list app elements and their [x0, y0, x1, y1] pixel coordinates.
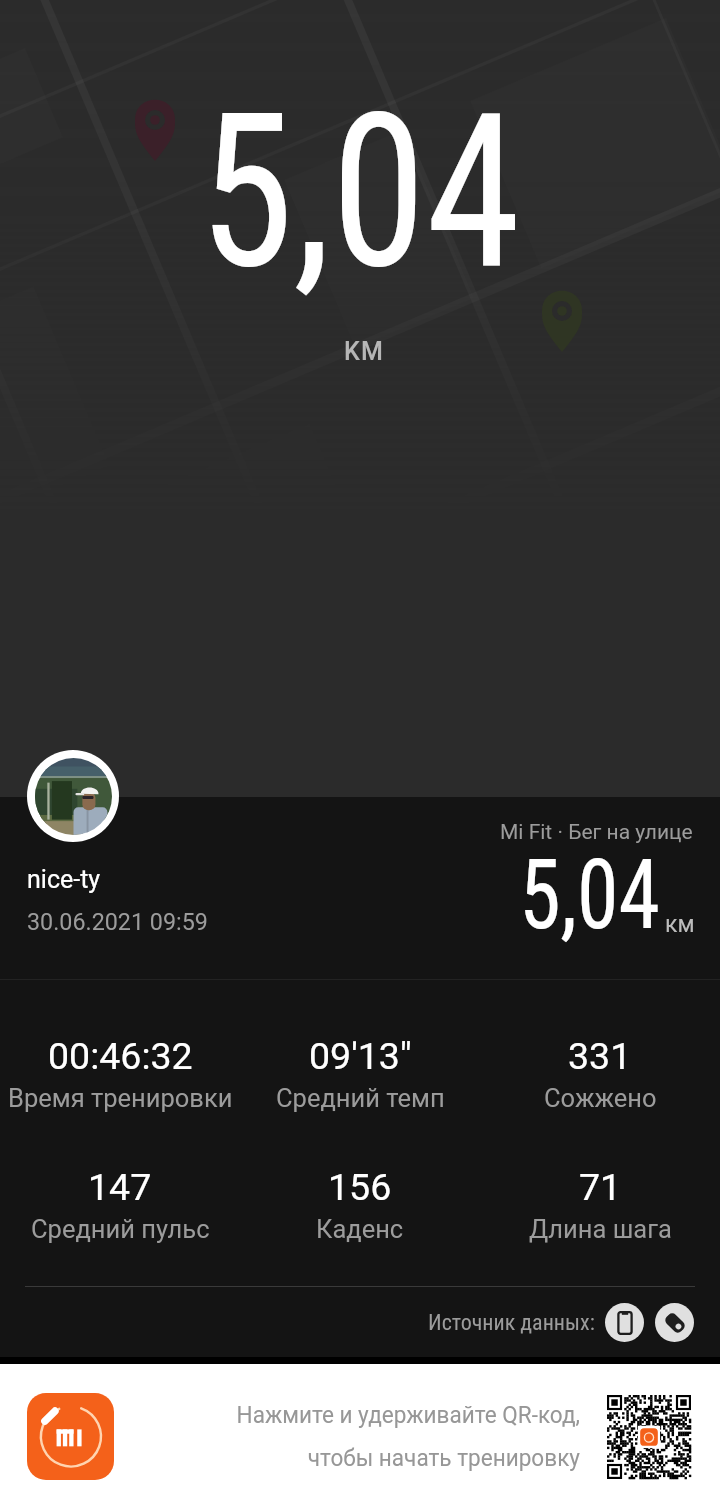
button[interactable]: QR code to start a workout: [607, 1395, 691, 1479]
staticText: Каденс: [316, 1214, 404, 1244]
button[interactable]: Profile photo: [27, 750, 119, 842]
staticText: Средний пульс: [31, 1214, 210, 1244]
staticText: nice-ty: [27, 865, 101, 894]
staticText: 5,04: [519, 839, 661, 952]
staticText: 00:46:32: [48, 1034, 193, 1078]
staticText: Mi Fit · Бег на улице: [500, 820, 693, 845]
button[interactable]: Mi Fit app: [27, 1393, 114, 1480]
staticText: Нажмите и удерживайте QR-код,: [236, 1401, 580, 1429]
staticText: KM: [344, 337, 385, 366]
staticText: км: [665, 911, 695, 938]
button[interactable]: 09'13": [240, 1034, 480, 1113]
button[interactable]: 147: [0, 1165, 240, 1244]
staticText: 147: [88, 1165, 152, 1209]
staticText: 30.06.2021 09:59: [27, 908, 208, 935]
staticText: Средний темп: [276, 1083, 445, 1113]
staticText: 156: [328, 1165, 392, 1209]
button[interactable]: 71: [480, 1165, 720, 1244]
staticText: 71: [579, 1165, 622, 1209]
staticText: Сожжено: [544, 1083, 657, 1113]
button[interactable]: 00:46:32: [0, 1034, 240, 1113]
staticText: 09'13": [309, 1034, 412, 1078]
staticText: Длина шага: [529, 1214, 672, 1244]
staticText: Источник данных:: [428, 1310, 595, 1336]
button[interactable]: Phone data source: [605, 1303, 644, 1342]
staticText: чтобы начать тренировку: [307, 1444, 580, 1472]
staticText: 331: [568, 1034, 632, 1078]
staticText: 5,04: [199, 67, 521, 317]
button[interactable]: 156: [240, 1165, 480, 1244]
staticText: Время тренировки: [8, 1083, 233, 1113]
button[interactable]: Band data source: [655, 1303, 694, 1342]
button[interactable]: 331: [480, 1034, 720, 1113]
